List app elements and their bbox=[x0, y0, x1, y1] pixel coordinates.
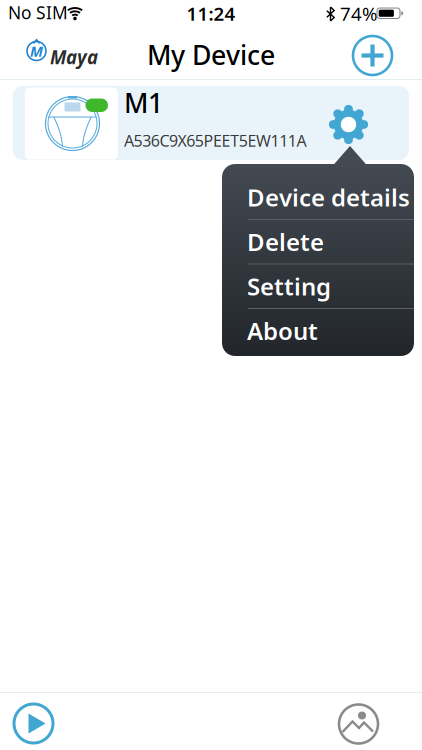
button[interactable]: About bbox=[247, 309, 415, 352]
staticText: Setting bbox=[247, 270, 331, 302]
button[interactable]: Add device bbox=[351, 34, 394, 77]
staticText: 74% bbox=[340, 1, 378, 26]
button[interactable]: M1 bbox=[13, 86, 409, 160]
staticText: Device details bbox=[247, 181, 410, 213]
button[interactable]: Device settings bbox=[329, 105, 368, 144]
staticText: 11:24 bbox=[186, 1, 235, 26]
button[interactable]: Device details bbox=[247, 175, 415, 219]
button[interactable]: Setting bbox=[247, 264, 415, 308]
button[interactable]: Delete bbox=[247, 220, 415, 263]
staticText: My Device bbox=[147, 37, 275, 72]
staticText: Delete bbox=[247, 226, 324, 258]
staticText: M1 bbox=[124, 85, 163, 120]
staticText: Maya bbox=[50, 44, 98, 69]
staticText: M bbox=[30, 41, 43, 61]
staticText: About bbox=[247, 315, 318, 347]
staticText: No SIM bbox=[8, 1, 68, 24]
button[interactable]: Photos bbox=[337, 703, 379, 745]
staticText: A536C9X65PEET5EW111A bbox=[124, 130, 306, 151]
button[interactable]: Play bbox=[12, 702, 54, 744]
